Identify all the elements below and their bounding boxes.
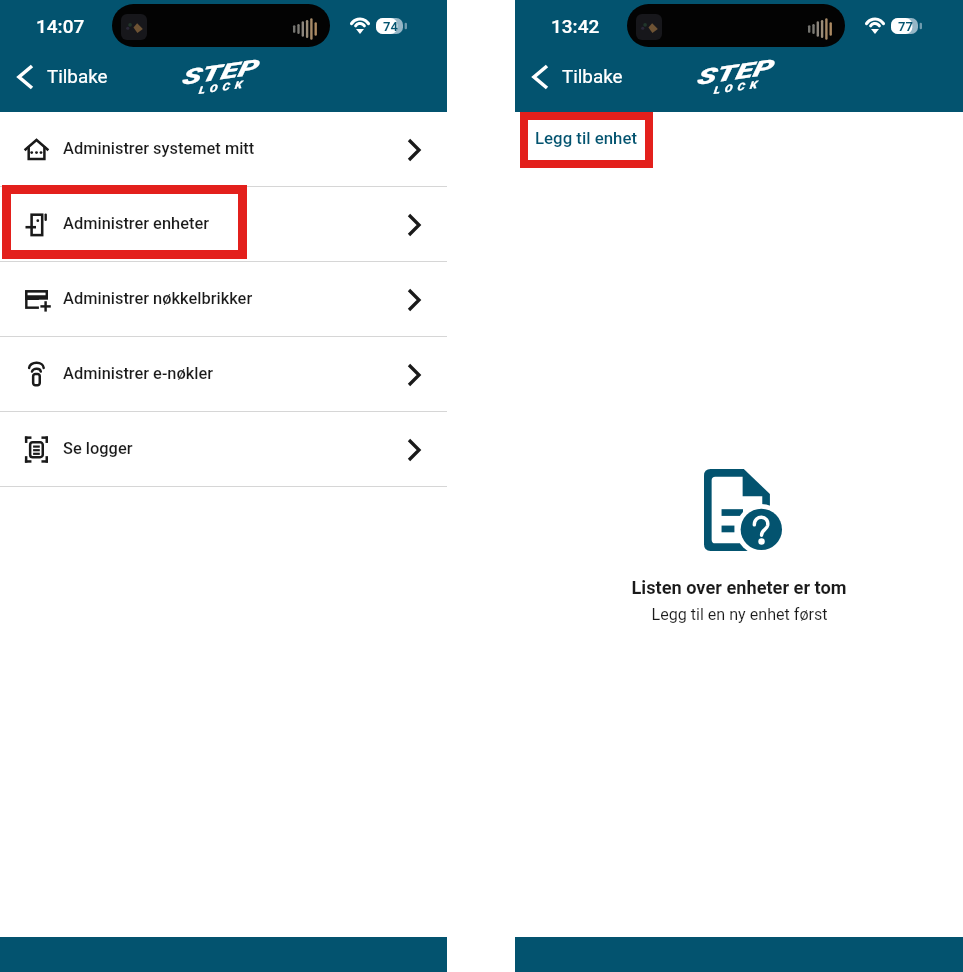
staticText: Administrer e-nøkler (63, 364, 214, 383)
button[interactable]: Legg til enhet (515, 112, 659, 164)
staticText: Legg til en ny enhet først (651, 605, 828, 624)
button[interactable]: Se logger (0, 412, 447, 487)
staticText: 14:07 (36, 15, 85, 37)
staticText: 13:42 (551, 15, 600, 37)
staticText: LOCK (712, 78, 763, 97)
button[interactable]: Administrer systemet mitt (0, 112, 447, 187)
staticText: Administrer nøkkelbrikker (63, 289, 253, 308)
staticText: 77 (898, 19, 913, 34)
staticText: LOCK (197, 78, 248, 97)
staticText: Tilbake (562, 66, 623, 88)
staticText: STEP (693, 55, 774, 90)
staticText: Listen over enheter er tom (631, 577, 847, 598)
staticText: STEP (178, 55, 259, 90)
staticText: Legg til enhet (535, 128, 637, 148)
button[interactable]: Administrer nøkkelbrikker (0, 262, 447, 337)
button[interactable]: Tilbake (0, 55, 122, 99)
staticText: Se logger (63, 439, 133, 458)
button[interactable]: Administrer enheter (0, 187, 447, 262)
staticText: Tilbake (47, 66, 108, 88)
button[interactable]: Tilbake (515, 55, 637, 99)
staticText: Administrer enheter (63, 214, 209, 233)
staticText: 74 (383, 19, 398, 34)
staticText: Administrer systemet mitt (63, 139, 255, 158)
button[interactable]: Administrer e-nøkler (0, 337, 447, 412)
